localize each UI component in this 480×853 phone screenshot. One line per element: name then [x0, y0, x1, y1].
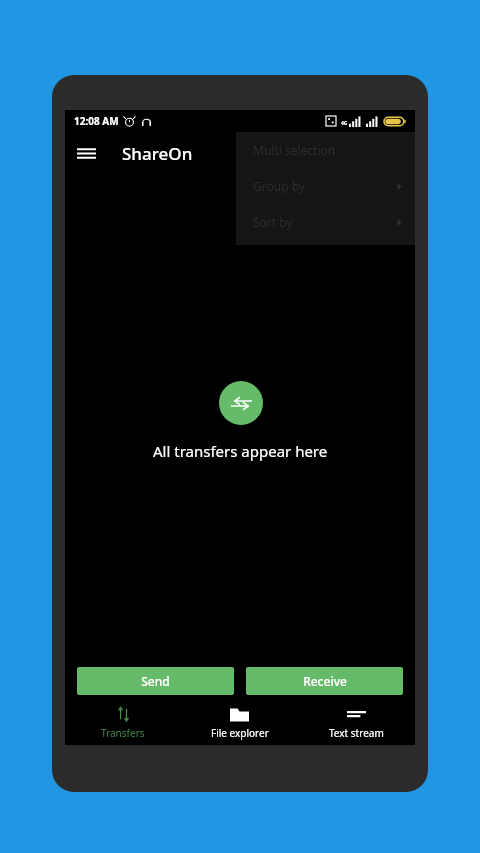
button[interactable]: Transfers: [65, 701, 181, 745]
staticText: Transfers: [101, 726, 145, 740]
staticText: All transfers appear here: [153, 441, 328, 461]
staticText: 12:08 AM: [74, 114, 119, 128]
button[interactable]: Send: [77, 667, 234, 695]
button[interactable]: Receive: [246, 667, 403, 695]
button[interactable]: Open navigation drawer: [65, 132, 107, 174]
button[interactable]: File explorer: [181, 701, 298, 745]
staticText: Receive: [303, 673, 347, 689]
button[interactable]: Text stream: [298, 701, 415, 745]
button[interactable]: Multi selection: [236, 132, 415, 168]
staticText: Sort by: [253, 214, 293, 230]
staticText: File explorer: [211, 726, 269, 740]
staticText: ShareOn: [122, 142, 193, 165]
staticText: Text stream: [329, 726, 384, 740]
staticText: Send: [141, 673, 170, 689]
button[interactable]: Group by: [236, 168, 415, 204]
staticText: Group by: [253, 178, 305, 194]
staticText: Multi selection: [253, 142, 336, 158]
staticText: 4G: [341, 120, 348, 127]
